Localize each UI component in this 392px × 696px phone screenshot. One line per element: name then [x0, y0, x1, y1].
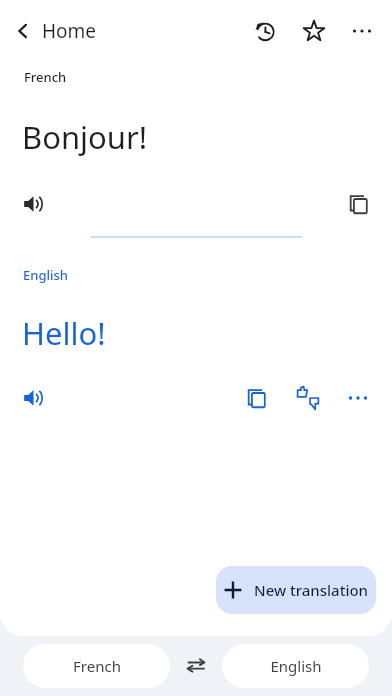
button[interactable]: English [222, 644, 369, 688]
button[interactable]: History [242, 9, 286, 53]
staticText: English [23, 266, 68, 284]
staticText: New translation [254, 580, 369, 600]
button[interactable]: French [23, 644, 170, 688]
staticText: Bonjour! [22, 116, 148, 158]
button[interactable]: Favorite [292, 9, 336, 53]
button[interactable]: More options [340, 9, 384, 53]
button[interactable]: Swap languages [170, 644, 222, 688]
button[interactable]: Listen to translation [12, 376, 56, 420]
button[interactable]: More translation options [336, 376, 380, 420]
staticText: Home [42, 18, 97, 44]
button[interactable]: Copy translation [234, 376, 278, 420]
button[interactable]: Listen to source text [12, 182, 56, 226]
button[interactable]: New translation [216, 566, 376, 614]
button[interactable]: Copy source text [336, 182, 380, 226]
staticText: English [270, 656, 322, 676]
button[interactable]: Rate this translation [286, 376, 330, 420]
button[interactable]: Home [6, 12, 109, 50]
staticText: Hello! [22, 312, 106, 354]
staticText: French [24, 68, 67, 86]
staticText: French [73, 656, 121, 676]
